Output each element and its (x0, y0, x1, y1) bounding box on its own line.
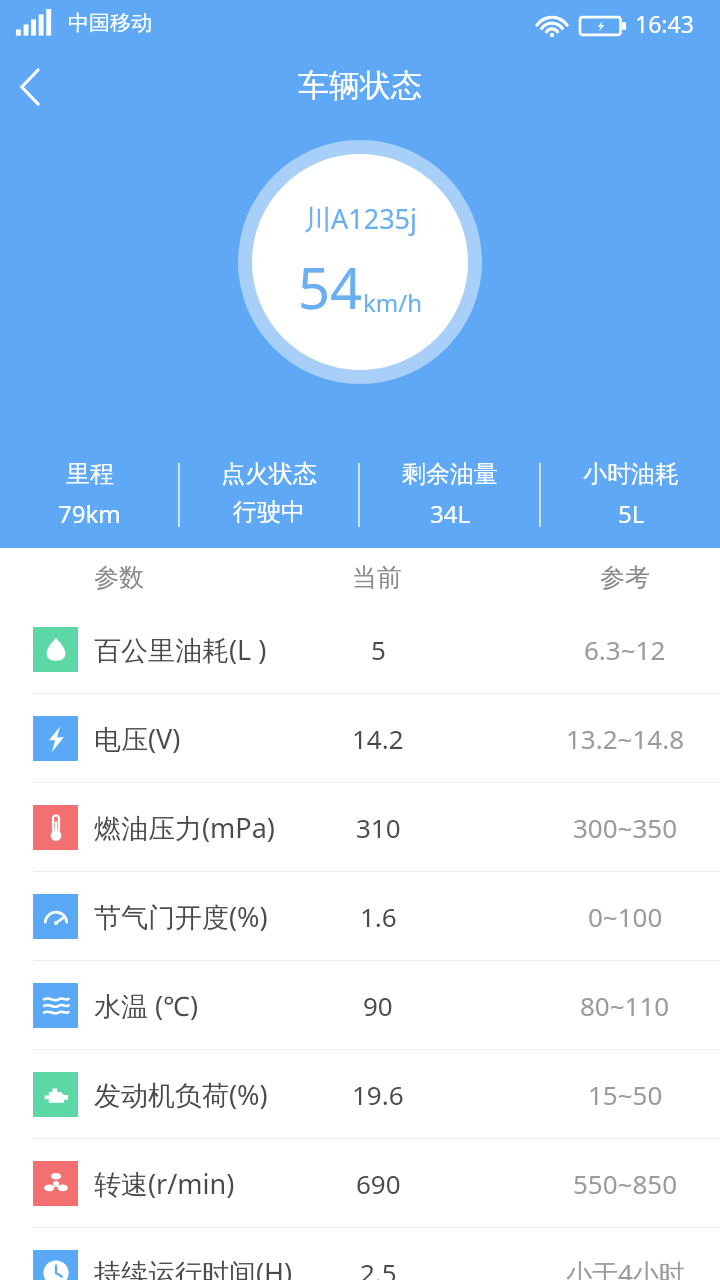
button[interactable]: 水温 (℃) (0, 961, 720, 1049)
staticText: 川A1235j (304, 200, 417, 237)
staticText: 690 (356, 1166, 401, 1201)
staticText: 小时油耗 (583, 459, 679, 489)
staticText: 转速(r/min) (94, 1165, 235, 1202)
staticText: 节气门开度(%) (94, 898, 268, 935)
staticText: 13.2~14.8 (566, 721, 685, 756)
staticText: 发动机负荷(%) (94, 1076, 268, 1113)
staticText: 300~350 (573, 810, 678, 845)
staticText: 2.5 (360, 1255, 397, 1280)
button[interactable]: 持续运行时间(H) (0, 1228, 720, 1280)
staticText: 行驶中 (233, 497, 305, 527)
button[interactable]: 节气门开度(%) (0, 872, 720, 960)
button[interactable]: 电压(V) (0, 694, 720, 782)
staticText: 电压(V) (94, 720, 181, 757)
button[interactable]: 发动机负荷(%) (0, 1050, 720, 1138)
staticText: 90 (363, 988, 393, 1023)
staticText: 14.2 (352, 721, 404, 756)
button[interactable]: 剩余油量 (360, 450, 539, 521)
staticText: 15~50 (588, 1077, 663, 1112)
staticText: 80~110 (580, 988, 670, 1023)
staticText: 6.3~12 (584, 632, 666, 667)
staticText: 550~850 (573, 1166, 678, 1201)
staticText: 百公里油耗(L ) (94, 631, 267, 668)
staticText: 参考 (600, 562, 650, 593)
button[interactable]: Back (0, 56, 62, 118)
button[interactable]: 点火状态 (180, 450, 358, 518)
staticText: 水温 (℃) (94, 987, 199, 1024)
staticText: 小于4小时 (566, 1255, 685, 1280)
staticText: 燃油压力(mPa) (94, 809, 275, 846)
staticText: 中国移动 (68, 10, 152, 36)
staticText: 1.6 (360, 899, 397, 934)
staticText: 0~100 (588, 899, 663, 934)
staticText: 54 (298, 249, 363, 325)
staticText: 里程 (66, 459, 114, 489)
staticText: 当前 (352, 562, 402, 593)
staticText: 5 (371, 632, 386, 667)
staticText: 点火状态 (221, 459, 317, 489)
staticText: 车辆状态 (0, 66, 720, 105)
staticText: 79km (58, 497, 121, 530)
button[interactable]: 燃油压力(mPa) (0, 783, 720, 871)
button[interactable]: 里程 (0, 450, 178, 521)
staticText: 5L (618, 497, 645, 530)
staticText: 19.6 (352, 1077, 404, 1112)
button[interactable]: 转速(r/min) (0, 1139, 720, 1227)
button[interactable]: 小时油耗 (541, 450, 720, 521)
staticText: km/h (363, 286, 423, 319)
staticText: 剩余油量 (402, 459, 498, 489)
staticText: 持续运行时间(H) (94, 1254, 293, 1280)
staticText: 16:43 (635, 8, 694, 39)
staticText: 参数 (94, 562, 144, 593)
staticText: 34L (430, 497, 471, 530)
button[interactable]: 百公里油耗(L ) (0, 605, 720, 693)
staticText: 310 (356, 810, 401, 845)
